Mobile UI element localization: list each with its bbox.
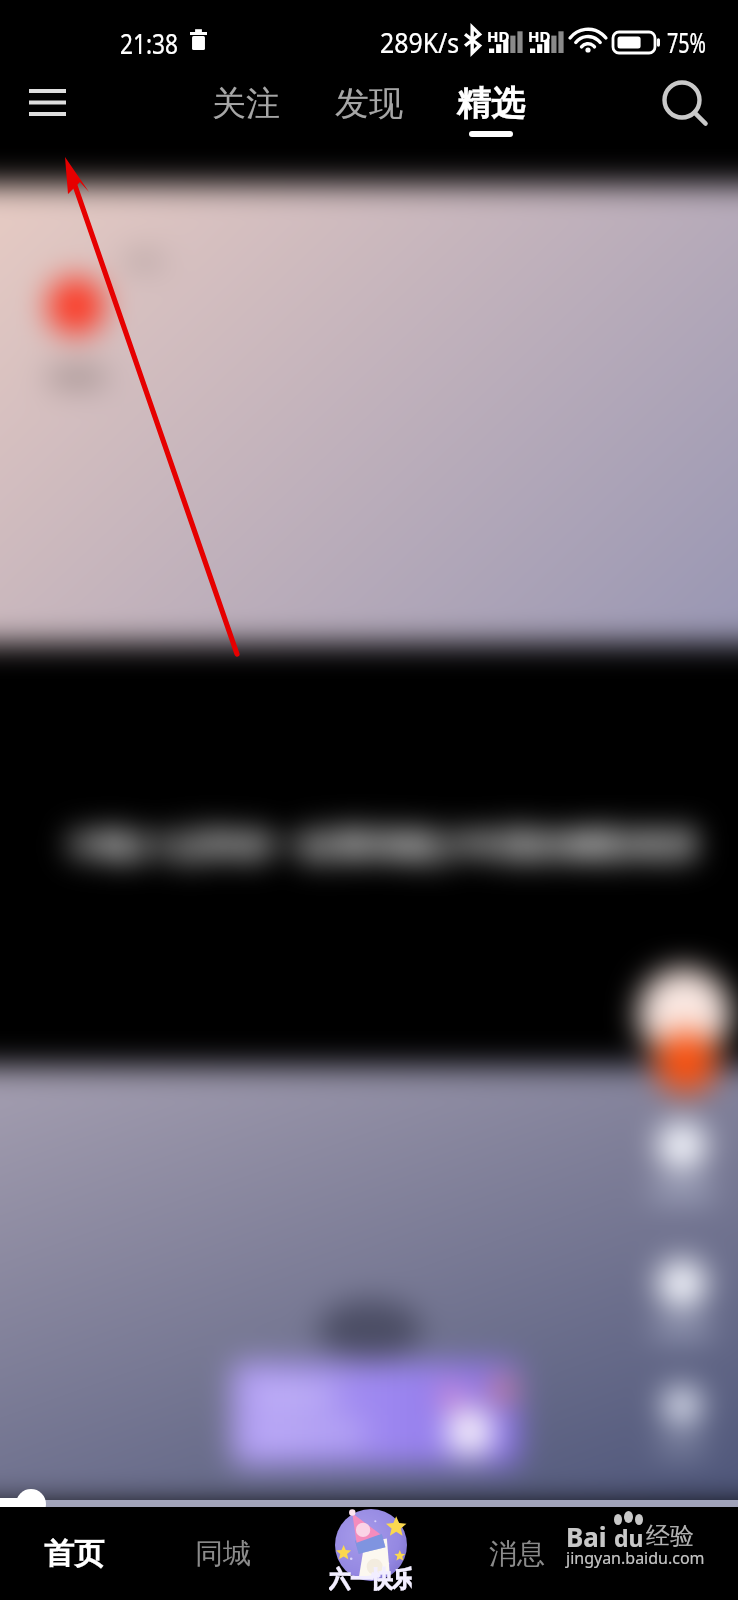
staticText: Bai — [566, 1519, 607, 1554]
button[interactable]: 发现 — [317, 76, 421, 148]
staticText: 今晚21点和你一起看高能少年团的精彩表演啦 — [66, 822, 694, 872]
button[interactable]: Menu — [8, 70, 86, 136]
staticText: HD — [487, 26, 510, 46]
button[interactable]: 首页 — [12, 1507, 136, 1600]
button[interactable]: 精选 — [439, 76, 543, 148]
staticText: 发现 — [335, 82, 403, 125]
button[interactable]: Create — [326, 1493, 416, 1586]
staticText: 首页 — [44, 1535, 104, 1573]
staticText: 21:38 — [120, 25, 179, 62]
staticText: 六一快乐 — [329, 1565, 412, 1594]
button[interactable]: Search — [650, 69, 718, 137]
staticText: 同城 — [195, 1536, 251, 1571]
button[interactable]: 消息 — [455, 1507, 579, 1600]
staticText: 精选 — [457, 82, 525, 125]
staticText: 75% — [667, 24, 706, 61]
staticText: 经验 — [646, 1521, 694, 1551]
staticText: jingyan.baidu.com — [566, 1547, 705, 1569]
button[interactable]: 同城 — [161, 1507, 285, 1600]
staticText: 关注 — [212, 82, 280, 125]
button[interactable]: 关注 — [194, 76, 298, 148]
staticText: HD — [528, 26, 551, 46]
staticText: 消息 — [489, 1536, 545, 1571]
staticText: 289K/s — [380, 24, 460, 61]
staticText: du — [614, 1522, 644, 1553]
